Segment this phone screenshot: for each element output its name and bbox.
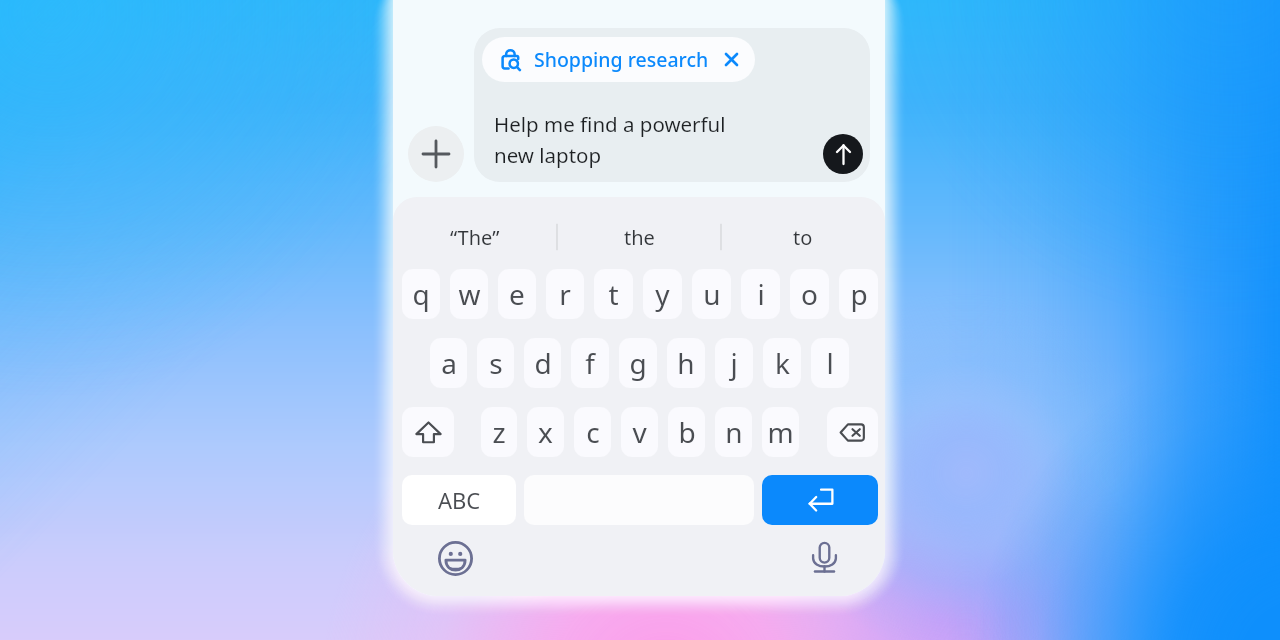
staticText: q — [412, 275, 430, 313]
button[interactable]: a — [430, 338, 467, 388]
staticText: v — [632, 413, 647, 451]
button[interactable]: v — [621, 407, 658, 457]
button[interactable]: Add attachment — [408, 126, 464, 182]
staticText: m — [767, 413, 794, 451]
staticText: z — [492, 413, 506, 451]
button[interactable]: g — [619, 338, 657, 388]
button[interactable]: w — [450, 269, 488, 319]
staticText: d — [534, 344, 552, 382]
button[interactable]: t — [594, 269, 633, 319]
button[interactable]: Voice input — [804, 537, 844, 577]
button[interactable]: Send — [823, 134, 863, 174]
button[interactable]: z — [481, 407, 517, 457]
button[interactable]: Emoji — [435, 538, 475, 578]
staticText: c — [586, 413, 600, 451]
staticText: ABC — [438, 485, 481, 515]
button[interactable]: x — [527, 407, 564, 457]
staticText: k — [775, 344, 790, 382]
button[interactable]: l — [811, 338, 849, 388]
staticText: b — [678, 413, 696, 451]
staticText: s — [489, 344, 503, 382]
button[interactable]: Shopping research — [482, 37, 755, 82]
button[interactable]: “The” — [393, 215, 557, 259]
button[interactable]: p — [839, 269, 878, 319]
button[interactable]: ABC — [402, 475, 516, 525]
button[interactable]: the — [557, 215, 721, 259]
staticText: Help me find a powerful new laptop — [494, 110, 726, 169]
button[interactable]: Enter — [762, 475, 878, 525]
button[interactable]: d — [524, 338, 561, 388]
button[interactable]: i — [741, 269, 780, 319]
staticText: w — [458, 275, 481, 313]
button[interactable]: r — [546, 269, 584, 319]
staticText: “The” — [450, 224, 500, 251]
button[interactable]: f — [571, 338, 609, 388]
staticText: t — [608, 275, 619, 313]
button[interactable]: Shift — [402, 407, 454, 457]
staticText: n — [725, 413, 743, 451]
button[interactable]: j — [715, 338, 753, 388]
staticText: Shopping research — [534, 46, 709, 73]
button[interactable]: s — [477, 338, 514, 388]
button[interactable]: q — [402, 269, 440, 319]
staticText: o — [801, 275, 818, 313]
button[interactable]: u — [692, 269, 731, 319]
button[interactable]: m — [762, 407, 799, 457]
staticText: f — [585, 344, 595, 382]
staticText: y — [655, 275, 670, 313]
button[interactable]: h — [667, 338, 705, 388]
staticText: p — [850, 275, 868, 313]
button[interactable]: c — [574, 407, 611, 457]
button[interactable]: Backspace — [827, 407, 878, 457]
staticText: the — [624, 224, 655, 251]
staticText: a — [441, 344, 457, 382]
staticText: l — [826, 344, 834, 382]
button[interactable]: k — [763, 338, 801, 388]
staticText: r — [559, 275, 571, 313]
button[interactable]: o — [790, 269, 829, 319]
staticText: u — [703, 275, 721, 313]
button[interactable]: e — [498, 269, 536, 319]
staticText: h — [677, 344, 695, 382]
button[interactable]: n — [715, 407, 752, 457]
staticText: g — [629, 344, 647, 382]
staticText: x — [538, 413, 553, 451]
button[interactable]: b — [668, 407, 705, 457]
staticText: to — [793, 224, 813, 251]
staticText: j — [730, 344, 738, 382]
button[interactable]: to — [721, 215, 885, 259]
staticText: i — [757, 275, 765, 313]
button[interactable]: y — [643, 269, 682, 319]
staticText: e — [509, 275, 525, 313]
